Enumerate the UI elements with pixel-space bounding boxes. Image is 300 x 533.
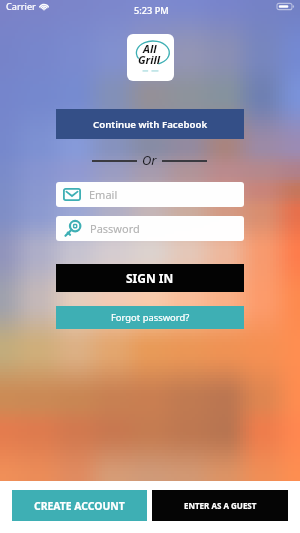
button[interactable]: Email [56, 182, 244, 207]
other: Password [63, 220, 82, 238]
staticText: Forgot password? [111, 311, 190, 324]
staticText: Email [89, 187, 118, 202]
staticText: CREATE ACCOUNT [34, 499, 125, 513]
staticText: All [143, 41, 157, 56]
button[interactable]: SIGN IN [56, 264, 244, 292]
button[interactable]: Password [56, 216, 244, 241]
staticText: ENTER AS A GUEST [184, 500, 257, 511]
staticText: 5:23 PM [134, 4, 169, 17]
staticText: Continue with Facebook [93, 118, 208, 131]
staticText: Or [142, 151, 157, 169]
staticText: Password [90, 221, 140, 236]
staticText: Grill [138, 52, 161, 67]
staticText: Carrier [6, 0, 36, 13]
button[interactable]: Continue with Facebook [56, 109, 244, 139]
other: Email [63, 188, 81, 201]
button[interactable]: CREATE ACCOUNT [12, 490, 147, 521]
button[interactable]: ENTER AS A GUEST [152, 490, 288, 521]
button[interactable]: Forgot password? [56, 306, 244, 329]
staticText: SIGN IN [126, 270, 174, 286]
